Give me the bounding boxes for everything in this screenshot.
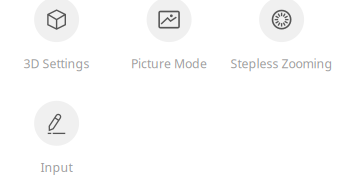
staticText: 3D Settings <box>24 55 90 72</box>
button[interactable]: Picture Mode <box>113 0 225 72</box>
button[interactable]: 3D Settings <box>1 0 113 72</box>
staticText: Input <box>41 159 73 175</box>
button[interactable]: Input <box>1 101 113 175</box>
staticText: Picture Mode <box>131 55 207 72</box>
staticText: Stepless Zooming <box>231 55 333 72</box>
button[interactable]: Stepless Zooming <box>226 0 338 72</box>
